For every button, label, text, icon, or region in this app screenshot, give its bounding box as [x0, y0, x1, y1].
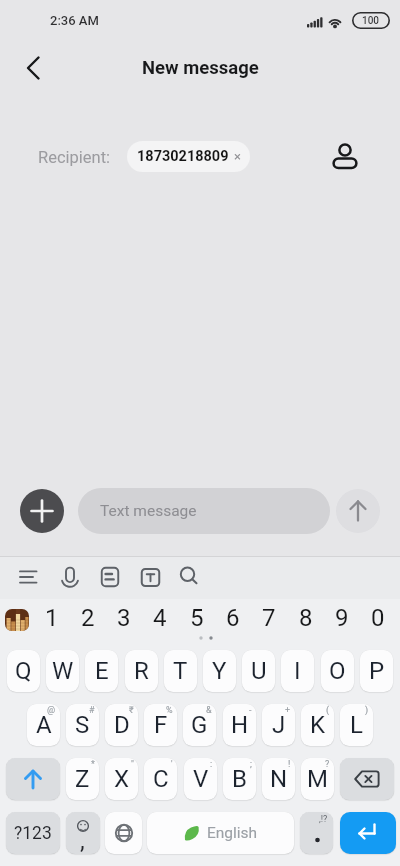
staticText: B [232, 765, 247, 793]
staticText: & [206, 705, 212, 716]
staticText: 5 [190, 604, 204, 632]
staticText: ,!? [319, 814, 328, 825]
staticText: E [95, 657, 109, 685]
button[interactable]: F [144, 704, 177, 746]
button[interactable]: K [301, 704, 334, 746]
staticText: F [154, 711, 168, 739]
button[interactable]: G [183, 704, 216, 746]
staticText: Z [75, 765, 90, 793]
button[interactable] [327, 134, 363, 174]
button[interactable]: E [85, 650, 118, 692]
button[interactable]: 9 [326, 602, 358, 633]
staticText: C [153, 765, 169, 793]
staticText: * [91, 759, 95, 770]
button[interactable]: 8 [290, 602, 322, 633]
staticText: ' [171, 759, 173, 770]
button[interactable] [105, 812, 142, 854]
button[interactable]: M [301, 758, 334, 800]
button[interactable]: 7 [253, 602, 285, 633]
staticText: % [166, 705, 173, 716]
button[interactable] [336, 489, 380, 533]
staticText: 3 [117, 604, 131, 632]
button[interactable] [94, 561, 126, 593]
staticText: ) [365, 705, 369, 716]
staticText: J [272, 711, 286, 739]
staticText: Y [212, 657, 227, 685]
staticText: × [234, 149, 241, 164]
button[interactable]: L [340, 704, 373, 746]
button[interactable]: 3 [108, 602, 140, 633]
button[interactable]: R [125, 650, 158, 692]
button[interactable]: English [147, 812, 294, 854]
button[interactable]: D [105, 704, 138, 746]
button[interactable]: 18730218809 [127, 141, 250, 172]
staticText: ? [325, 759, 330, 770]
staticText: : [210, 759, 213, 770]
button[interactable]: W [46, 650, 79, 692]
button[interactable]: Q [7, 650, 40, 692]
button[interactable] [173, 561, 205, 593]
staticText: @ [47, 705, 56, 716]
button[interactable]: Text message [78, 488, 330, 534]
button[interactable] [16, 52, 52, 84]
button[interactable] [340, 812, 396, 854]
button[interactable]: H [223, 704, 256, 746]
button[interactable]: A [27, 704, 60, 746]
button[interactable]: O [321, 650, 354, 692]
staticText: 0 [371, 604, 385, 632]
button[interactable]: 6 [217, 602, 249, 633]
button[interactable]: ?123 [6, 812, 60, 854]
button[interactable]: 5 [181, 602, 213, 633]
button[interactable] [340, 758, 394, 800]
staticText: K [310, 711, 326, 739]
button[interactable] [20, 489, 64, 533]
button[interactable]: C [144, 758, 177, 800]
staticText: V [193, 765, 209, 793]
staticText: English [207, 824, 258, 842]
button[interactable]: Y [203, 650, 236, 692]
staticText: A [36, 711, 52, 739]
button[interactable]: 0 [362, 602, 394, 633]
button[interactable]: ,!? [300, 812, 333, 854]
staticText: L [350, 711, 363, 739]
staticText: H [231, 711, 249, 739]
button[interactable]: V [184, 758, 217, 800]
staticText: ₹ [129, 705, 134, 716]
button[interactable]: S [66, 704, 99, 746]
button[interactable] [6, 758, 60, 800]
button[interactable]: T [164, 650, 197, 692]
button[interactable]: 4 [144, 602, 176, 633]
staticText: Recipient: [38, 148, 111, 167]
button[interactable] [134, 561, 166, 593]
staticText: - [249, 705, 252, 716]
staticText: ! [288, 759, 291, 770]
button[interactable]: Z [66, 758, 99, 800]
button[interactable]: J [262, 704, 295, 746]
staticText: ; [250, 759, 252, 770]
staticText: # [89, 705, 95, 716]
staticText: Q [15, 657, 32, 685]
button[interactable]: 2 [72, 602, 104, 633]
staticText: New message [142, 57, 259, 79]
staticText: 100 [362, 15, 380, 27]
staticText: , [80, 827, 85, 854]
button[interactable]: N [262, 758, 295, 800]
button[interactable]: I [281, 650, 314, 692]
staticText: " [131, 759, 134, 770]
button[interactable]: 1 [36, 602, 68, 633]
button[interactable]: U [242, 650, 275, 692]
button[interactable]: P [360, 650, 393, 692]
staticText: D [114, 711, 130, 739]
staticText: 2:36 AM [50, 13, 99, 28]
staticText: 7 [262, 604, 276, 632]
button[interactable] [54, 561, 86, 593]
button[interactable]: , [66, 812, 100, 854]
staticText: ( [326, 705, 330, 716]
button[interactable] [12, 561, 44, 593]
staticText: M [307, 765, 328, 793]
button[interactable]: X [105, 758, 138, 800]
button[interactable] [5, 609, 29, 631]
staticText: Text message [100, 502, 197, 520]
staticText: R [134, 657, 149, 685]
button[interactable]: B [223, 758, 256, 800]
